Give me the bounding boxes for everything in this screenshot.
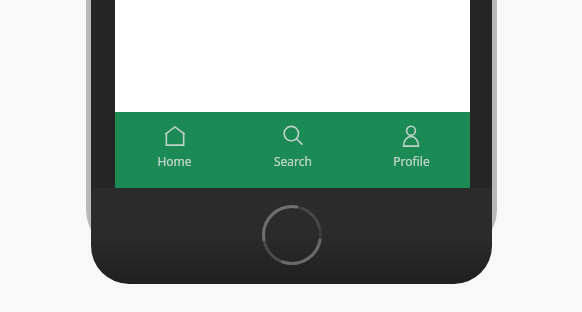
button[interactable]: Home — [115, 112, 234, 188]
other: Profile — [399, 124, 423, 148]
staticText: Profile — [393, 153, 430, 169]
other: Home — [163, 124, 187, 148]
button[interactable]: Search — [234, 112, 352, 188]
button[interactable]: Profile — [352, 112, 470, 188]
staticText: Search — [274, 153, 312, 169]
staticText: Home — [157, 153, 192, 169]
other: Search — [281, 124, 305, 148]
button[interactable]: Home button — [262, 205, 322, 265]
